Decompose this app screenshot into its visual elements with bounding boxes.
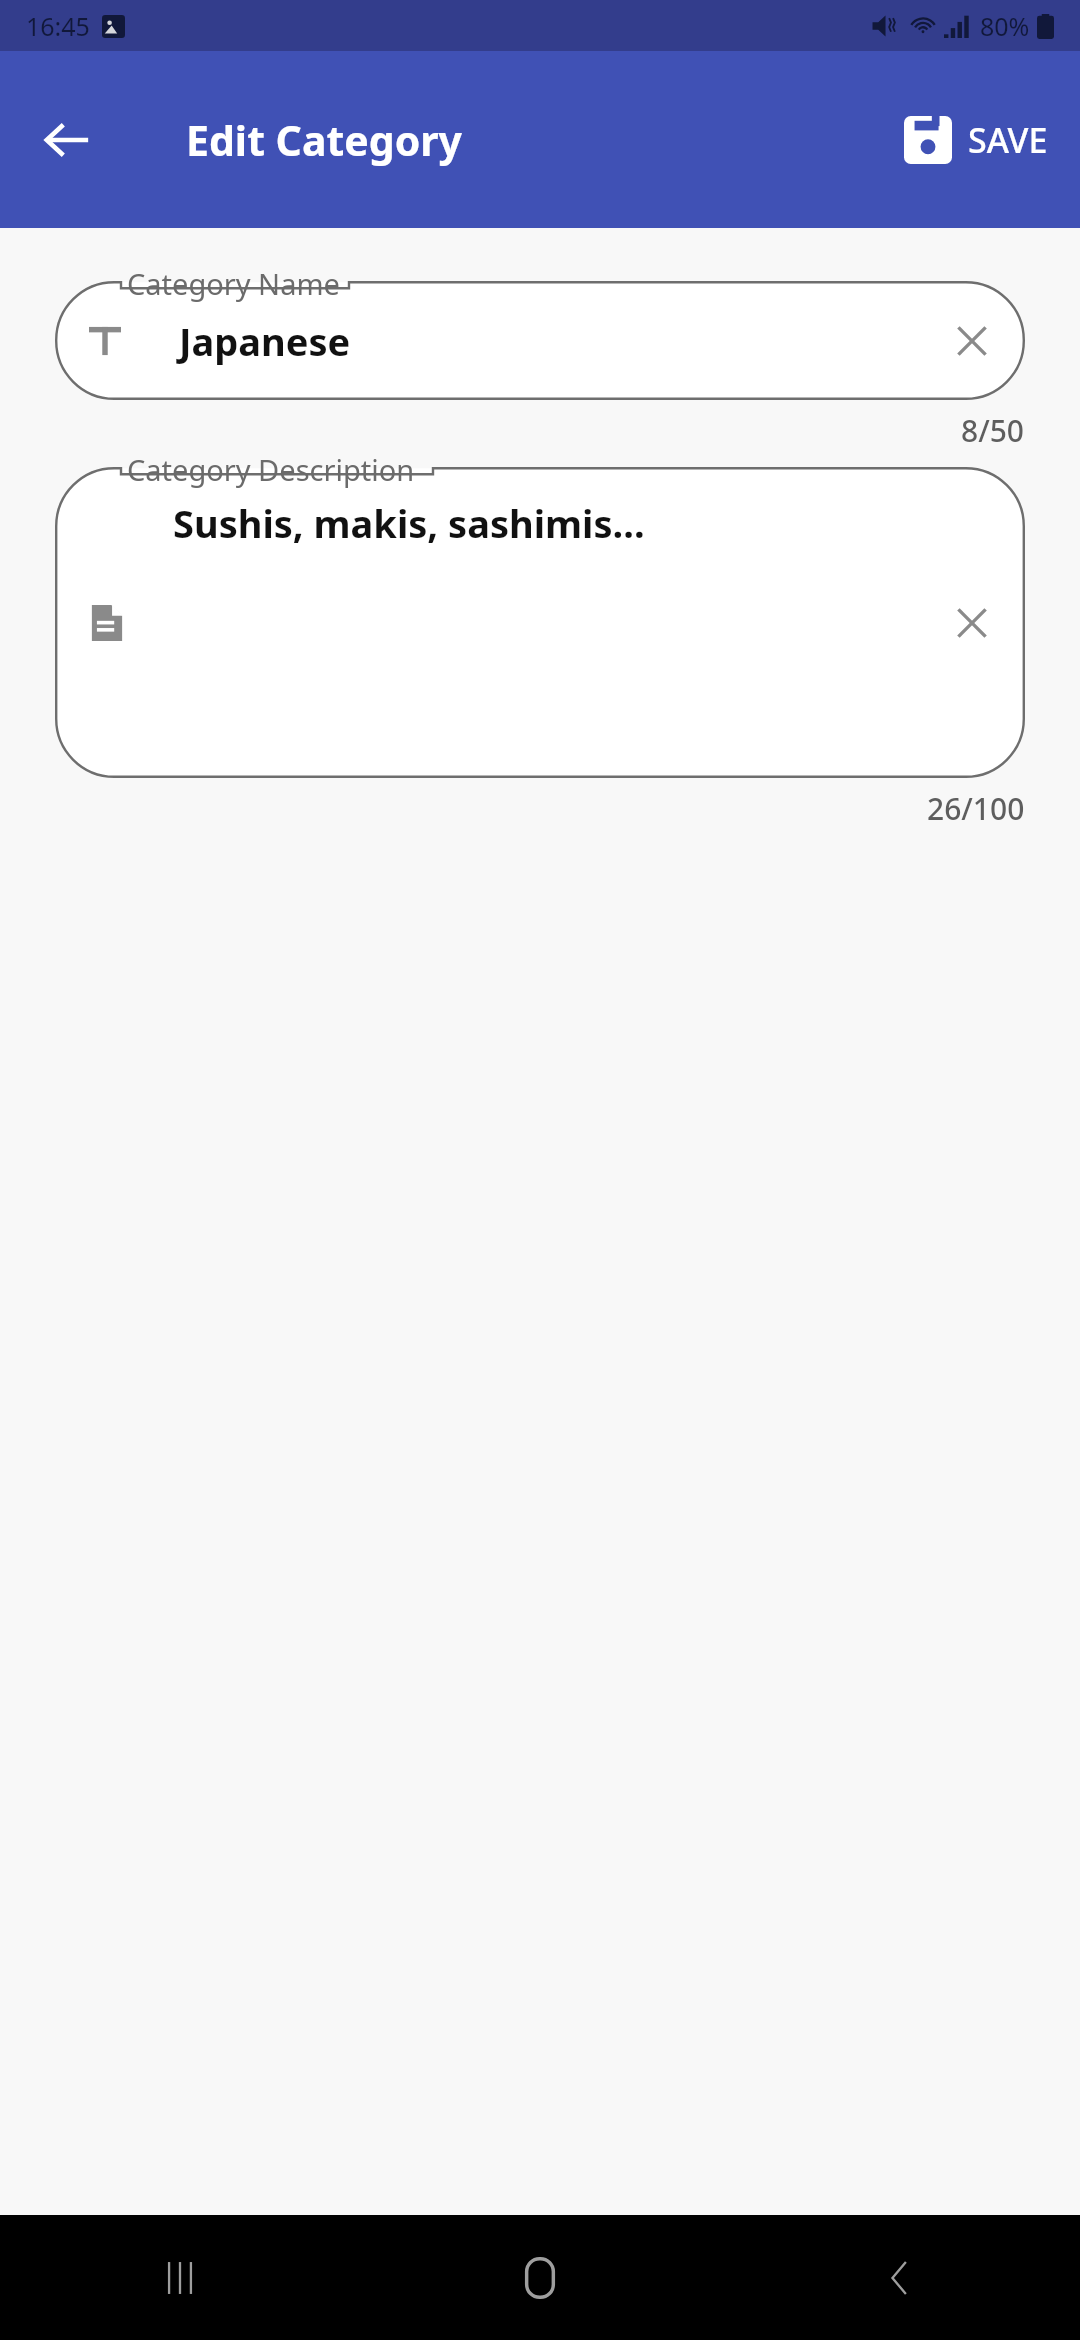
button[interactable]: SAVE	[890, 104, 1062, 176]
staticText: Category Name	[127, 264, 340, 303]
staticText: 26/100	[927, 788, 1025, 829]
button[interactable]: Home	[360, 2215, 720, 2340]
button[interactable]: Recents	[0, 2215, 360, 2340]
staticText: SAVE	[968, 117, 1048, 163]
button[interactable]: Category Description	[55, 467, 1025, 778]
button[interactable]: Clear category name	[943, 312, 1001, 370]
staticText: Edit Category	[186, 112, 463, 168]
staticText: 8/50	[961, 410, 1025, 451]
staticText: 16:45	[26, 9, 90, 43]
staticText: Sushis, makis, sashimis...	[173, 497, 645, 549]
staticText: Category Description	[127, 450, 415, 489]
staticText: 80%	[980, 9, 1030, 43]
button[interactable]: Back	[26, 99, 108, 181]
button[interactable]: Back	[720, 2215, 1080, 2340]
staticText: Japanese	[179, 315, 351, 367]
button[interactable]: Clear category description	[943, 594, 1001, 652]
button[interactable]: Category Name	[55, 281, 1025, 400]
